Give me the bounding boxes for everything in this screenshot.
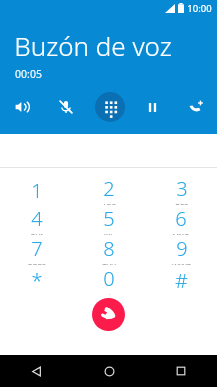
staticText: 8 (103, 235, 115, 262)
button[interactable]: * (0, 265, 73, 295)
button[interactable]: Add call (174, 84, 217, 130)
staticText: Buzón de voz (14, 28, 172, 63)
staticText: 6 (175, 205, 187, 232)
button[interactable]: Speaker (0, 84, 44, 130)
staticText: 10:00 (187, 2, 212, 15)
button[interactable]: Hold (131, 84, 174, 130)
button[interactable]: 5 (73, 205, 145, 235)
button[interactable]: Recents (145, 355, 217, 387)
button[interactable]: 9 (145, 235, 217, 265)
button[interactable]: End call (92, 298, 125, 331)
button[interactable]: Home (73, 355, 145, 387)
staticText: 5 (103, 205, 115, 232)
staticText: PQRS (28, 262, 46, 265)
button[interactable]: 8 (73, 235, 145, 265)
button[interactable]: # (145, 265, 217, 295)
staticText: # (175, 267, 188, 294)
staticText: 2 (103, 175, 115, 202)
button[interactable]: 1 (0, 175, 73, 205)
staticText: JKL (104, 232, 114, 235)
staticText: MNO (172, 232, 190, 235)
staticText: + (107, 292, 112, 295)
button[interactable]: Dialpad (95, 92, 125, 122)
button[interactable]: 2 (73, 175, 145, 205)
button[interactable]: Mute (44, 84, 88, 130)
button[interactable]: 0 (73, 265, 145, 295)
staticText: DEF (175, 202, 188, 205)
staticText: GHI (30, 232, 43, 235)
staticText: 3 (176, 175, 188, 202)
button[interactable]: 4 (0, 205, 73, 235)
staticText: ABC (102, 202, 116, 205)
button[interactable]: 7 (0, 235, 73, 265)
staticText: 0 (103, 265, 115, 292)
button[interactable]: Back (0, 355, 73, 387)
staticText: WXYZ (172, 262, 191, 265)
staticText: 00:05 (15, 67, 42, 81)
button[interactable]: 6 (145, 205, 217, 235)
staticText: 7 (31, 235, 43, 262)
staticText: * (31, 267, 43, 294)
staticText: 4 (31, 205, 43, 232)
staticText: 1 (31, 177, 43, 204)
button[interactable]: 3 (145, 175, 217, 205)
staticText: TUV (102, 262, 116, 265)
staticText: 9 (176, 235, 188, 262)
